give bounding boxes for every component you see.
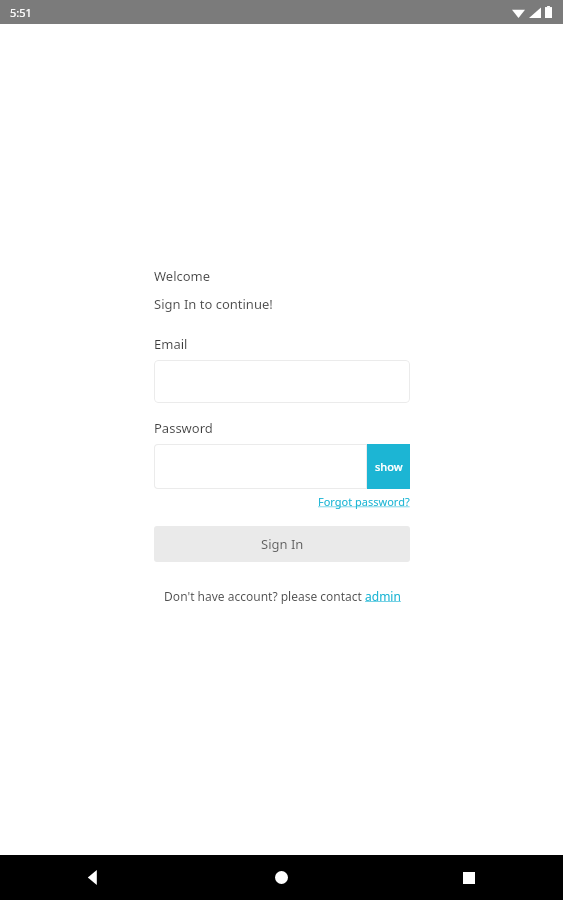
staticText: Email — [154, 335, 188, 353]
staticText: show — [375, 459, 403, 474]
button[interactable]: Recents — [375, 855, 563, 900]
button[interactable]: show — [367, 444, 410, 489]
button[interactable]: Forgot password? — [318, 494, 410, 509]
button[interactable]: Back — [0, 855, 187, 900]
button[interactable]: Home — [187, 855, 375, 900]
button[interactable]: Sign In — [154, 526, 410, 562]
staticText: Sign In to continue! — [154, 295, 273, 313]
button[interactable]: Don't have account? please contact admin — [164, 588, 401, 604]
button[interactable]: Email input — [154, 360, 410, 403]
staticText: Sign In — [261, 535, 304, 553]
staticText: Welcome — [154, 267, 211, 285]
button[interactable]: Password input — [154, 444, 367, 489]
staticText: Password — [154, 419, 213, 437]
staticText: 5:51 — [10, 5, 32, 20]
